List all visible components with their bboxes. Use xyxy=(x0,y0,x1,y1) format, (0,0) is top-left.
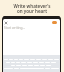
staticText: Write whatever's on your heart xyxy=(13,3,51,14)
button[interactable]: Save xyxy=(52,21,57,24)
staticText: Start writing... xyxy=(4,26,26,30)
button[interactable]: Close xyxy=(4,21,7,24)
